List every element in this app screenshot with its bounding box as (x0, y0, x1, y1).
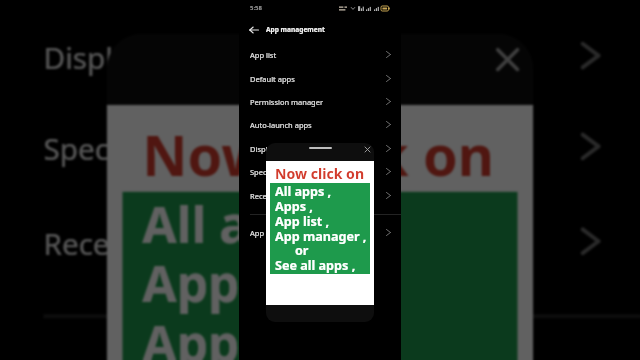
button[interactable]: Back (246, 22, 261, 37)
staticText: Special app access (43, 129, 300, 168)
staticText: Recently opened apps (250, 191, 328, 201)
button[interactable]: App cloner (0, 342, 640, 360)
button[interactable]: Auto-launch apps (0, 0, 640, 6)
staticText: Apps , (142, 251, 292, 318)
button[interactable]: App list (239, 43, 401, 66)
staticText: Auto-launch apps (250, 120, 312, 130)
staticText: App management (266, 25, 325, 34)
staticText: Display over other apps (43, 38, 375, 77)
staticText: App list , (275, 213, 330, 230)
button[interactable]: Default apps (239, 67, 401, 90)
staticText: App cloner (250, 228, 289, 238)
staticText: Permission manager (250, 97, 324, 107)
button[interactable]: Display over other apps (0, 10, 640, 101)
staticText: All apps , (275, 183, 332, 200)
button[interactable]: Close (362, 144, 373, 155)
staticText: See all apps , (275, 257, 356, 274)
staticText: Display over other apps (250, 144, 334, 154)
button[interactable]: Close (486, 38, 529, 81)
button[interactable]: Special app access (239, 160, 401, 183)
staticText: Default apps (250, 74, 295, 84)
button[interactable]: Special app access (0, 101, 640, 192)
button[interactable]: Recently opened apps (0, 196, 640, 287)
button[interactable]: Display over other apps (239, 137, 401, 160)
button[interactable]: App cloner (239, 221, 401, 244)
staticText: Recently opened apps (43, 223, 352, 263)
staticText: Now click on (142, 117, 498, 192)
staticText: Special app access (250, 167, 315, 177)
staticText: Apps , (275, 198, 313, 215)
staticText: App list (250, 50, 277, 60)
staticText: Now click on (275, 164, 365, 183)
staticText: or (295, 242, 309, 259)
staticText: App manager , (275, 228, 367, 245)
staticText: All apps , (142, 192, 367, 259)
staticText: 5:58 (250, 4, 262, 12)
button[interactable]: Auto-launch apps (239, 113, 401, 136)
button[interactable]: Permission manager (239, 90, 401, 113)
button[interactable]: Recently opened apps (239, 184, 401, 207)
staticText: App list , (142, 310, 360, 360)
